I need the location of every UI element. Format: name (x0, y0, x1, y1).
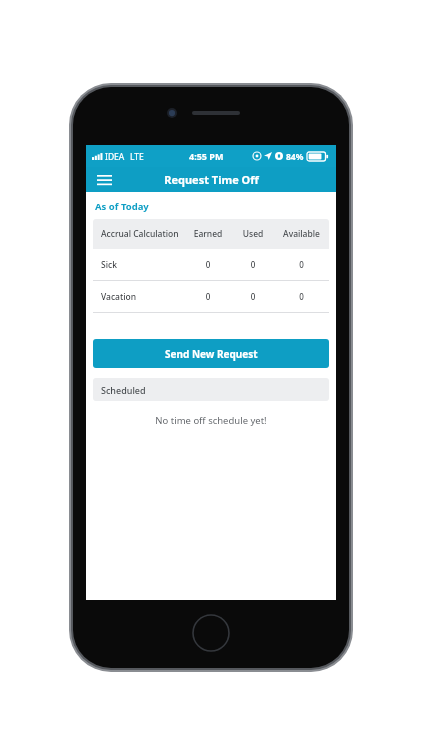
staticText: IDEA (105, 151, 125, 163)
staticText: Accrual Calculation (101, 228, 184, 240)
staticText: Request Time Off (164, 172, 259, 187)
staticText: Vacation (101, 291, 184, 303)
staticText: Send New Request (165, 347, 258, 361)
staticText: No time off schedule yet! (86, 414, 336, 427)
staticText: 4:55 PM (189, 150, 224, 162)
staticText: Used (232, 228, 274, 240)
staticText: 0 (184, 291, 232, 302)
button[interactable]: Vacation (93, 281, 329, 312)
staticText: 0 (274, 291, 329, 302)
button[interactable]: Sick (93, 249, 329, 280)
staticText: 0 (184, 259, 232, 270)
staticText: Scheduled (101, 384, 146, 396)
staticText: 0 (274, 259, 329, 270)
staticText: 84% (286, 151, 304, 163)
button[interactable]: Open navigation menu (91, 167, 117, 192)
staticText: Sick (101, 259, 184, 271)
staticText: Earned (184, 228, 232, 240)
staticText: 0 (232, 291, 274, 302)
button[interactable]: Send New Request (93, 339, 329, 368)
staticText: Available (274, 228, 329, 240)
staticText: LTE (130, 151, 144, 163)
staticText: 0 (232, 259, 274, 270)
staticText: As of Today (95, 200, 149, 213)
